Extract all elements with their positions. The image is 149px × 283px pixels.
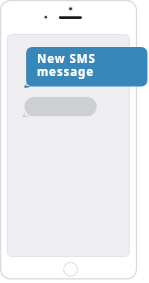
button[interactable]: New SMS message notification	[0, 0, 149, 283]
